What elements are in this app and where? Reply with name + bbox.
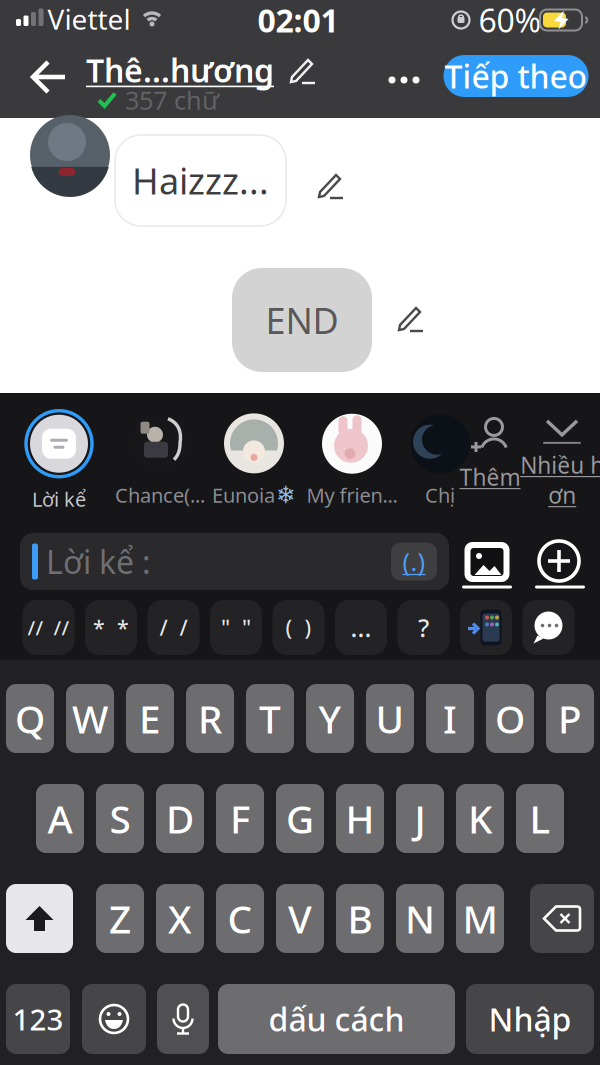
- button[interactable]: K: [456, 784, 504, 853]
- staticText: Haizzz...: [132, 157, 269, 204]
- staticText: ...: [350, 611, 371, 644]
- button[interactable]: Haizzz...: [115, 135, 286, 226]
- button[interactable]: My frien...: [306, 414, 397, 508]
- staticText: 123: [12, 999, 63, 1038]
- button[interactable]: X: [156, 884, 204, 953]
- staticText: T: [259, 693, 281, 744]
- button[interactable]: Lời kể text field: [20, 533, 449, 590]
- staticText: L: [529, 793, 550, 844]
- button[interactable]: S: [96, 784, 144, 853]
- button[interactable]: END: [232, 268, 372, 372]
- staticText: M: [462, 893, 497, 944]
- button[interactable]: Chance(...: [115, 414, 205, 508]
- staticText: H: [345, 793, 374, 844]
- button[interactable]: A: [36, 784, 84, 853]
- button[interactable]: More characters: [520, 420, 600, 510]
- staticText: ?: [418, 611, 429, 644]
- button[interactable]: R: [186, 684, 234, 753]
- button[interactable]: T: [246, 684, 294, 753]
- button[interactable]: ...: [335, 600, 387, 655]
- button[interactable]: Edit message: [392, 300, 428, 336]
- button[interactable]: J: [396, 784, 444, 853]
- staticText: END: [265, 296, 338, 344]
- button[interactable]: G: [276, 784, 324, 853]
- staticText: K: [468, 793, 492, 844]
- button[interactable]: Chị: [410, 414, 470, 508]
- button[interactable]: N: [396, 884, 444, 953]
- button[interactable]: H: [336, 784, 384, 853]
- button[interactable]: Edit title: [86, 49, 316, 91]
- button[interactable]: B: [336, 884, 384, 953]
- staticText: I: [443, 693, 457, 744]
- button[interactable]: Tiếp theo: [443, 55, 588, 97]
- staticText: Chance(...: [115, 482, 205, 508]
- button[interactable]: // //: [22, 600, 74, 655]
- button[interactable]: Y: [306, 684, 354, 753]
- button[interactable]: Send to phone: [460, 600, 512, 655]
- staticText: ( ): [285, 613, 311, 642]
- button[interactable]: O: [486, 684, 534, 753]
- staticText: 357 chữ: [125, 83, 219, 117]
- staticText: J: [414, 793, 425, 844]
- button[interactable]: C: [216, 884, 264, 953]
- staticText: Lời kể: [32, 486, 86, 512]
- button[interactable]: Message bubble: [522, 600, 574, 655]
- button[interactable]: M: [456, 884, 504, 953]
- staticText: E: [139, 693, 161, 744]
- button[interactable]: 123: [6, 984, 70, 1054]
- button[interactable]: W: [66, 684, 114, 753]
- button[interactable]: Eunoia: [212, 413, 296, 509]
- staticText: Thêm: [459, 462, 520, 492]
- staticText: Nhiều h ơn: [520, 450, 600, 510]
- staticText: ❄: [276, 481, 296, 509]
- button[interactable]: Shift: [6, 884, 73, 953]
- button[interactable]: Edit message: [312, 167, 348, 203]
- button[interactable]: E: [126, 684, 174, 753]
- button[interactable]: ( ): [272, 600, 324, 655]
- staticText: 60%: [478, 0, 541, 41]
- staticText: U: [375, 693, 404, 744]
- button[interactable]: ?: [397, 600, 449, 655]
- button[interactable]: Emoji: [82, 984, 146, 1054]
- button[interactable]: More options: [380, 68, 427, 91]
- button[interactable]: Dictate: [157, 984, 209, 1054]
- button[interactable]: Add: [537, 539, 581, 583]
- button[interactable]: Delete: [530, 884, 594, 953]
- staticText: Z: [109, 893, 131, 944]
- button[interactable]: D: [156, 784, 204, 853]
- button[interactable]: F: [216, 784, 264, 853]
- staticText: / /: [159, 613, 187, 642]
- button[interactable]: P: [546, 684, 594, 753]
- button[interactable]: Back: [23, 54, 75, 100]
- button[interactable]: Q: [6, 684, 54, 753]
- button[interactable]: U: [366, 684, 414, 753]
- button[interactable]: L: [516, 784, 564, 853]
- staticText: F: [230, 793, 250, 844]
- button[interactable]: Insert brackets: [391, 542, 437, 580]
- staticText: 02:01: [257, 0, 338, 41]
- staticText: B: [347, 893, 372, 944]
- staticText: W: [72, 693, 108, 744]
- staticText: * *: [93, 613, 129, 642]
- button[interactable]: dấu cách: [218, 984, 455, 1054]
- staticText: Thê...hương: [86, 49, 274, 91]
- staticText: Chị: [425, 482, 455, 508]
- staticText: A: [47, 793, 72, 844]
- staticText: N: [405, 893, 435, 944]
- staticText: Q: [15, 693, 45, 744]
- button[interactable]: Z: [96, 884, 144, 953]
- button[interactable]: * *: [85, 600, 137, 655]
- button[interactable]: I: [426, 684, 474, 753]
- staticText: G: [286, 793, 314, 844]
- button[interactable]: " ": [210, 600, 262, 655]
- button[interactable]: Add image: [464, 542, 509, 582]
- button[interactable]: Nhập: [466, 984, 594, 1054]
- button[interactable]: V: [276, 884, 324, 953]
- staticText: V: [288, 893, 312, 944]
- staticText: Nhập: [488, 998, 571, 1040]
- staticText: // //: [27, 614, 69, 641]
- staticText: " ": [221, 613, 251, 642]
- button[interactable]: Lời kể: [25, 410, 93, 512]
- button[interactable]: / /: [147, 600, 199, 655]
- button[interactable]: Add character: [459, 416, 520, 492]
